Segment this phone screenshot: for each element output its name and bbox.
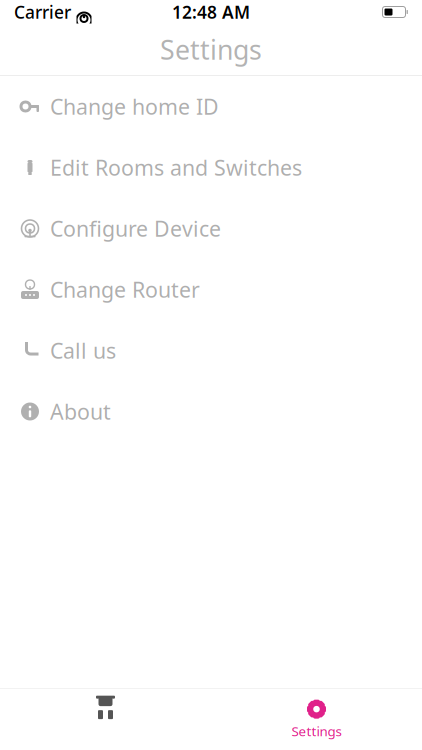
button[interactable]: Change home ID xyxy=(0,76,422,137)
staticText: Configure Device xyxy=(50,214,221,243)
staticText: Carrier xyxy=(14,0,71,23)
button[interactable]: Change Router xyxy=(0,259,422,320)
button[interactable]: Configure Device xyxy=(0,198,422,259)
button[interactable]: Home xyxy=(0,689,211,750)
staticText: Call us xyxy=(50,336,116,365)
staticText: About xyxy=(50,397,111,426)
staticText: 12:48 AM xyxy=(172,0,250,23)
staticText: Change home ID xyxy=(50,92,219,121)
staticText: Settings xyxy=(291,722,341,740)
staticText: Change Router xyxy=(50,275,200,304)
button[interactable]: Call us xyxy=(0,320,422,381)
staticText: Edit Rooms and Switches xyxy=(50,153,302,182)
button[interactable]: Edit Rooms and Switches xyxy=(0,137,422,198)
button[interactable]: About xyxy=(0,381,422,442)
staticText: Settings xyxy=(160,32,262,67)
button[interactable]: Settings xyxy=(211,689,422,750)
